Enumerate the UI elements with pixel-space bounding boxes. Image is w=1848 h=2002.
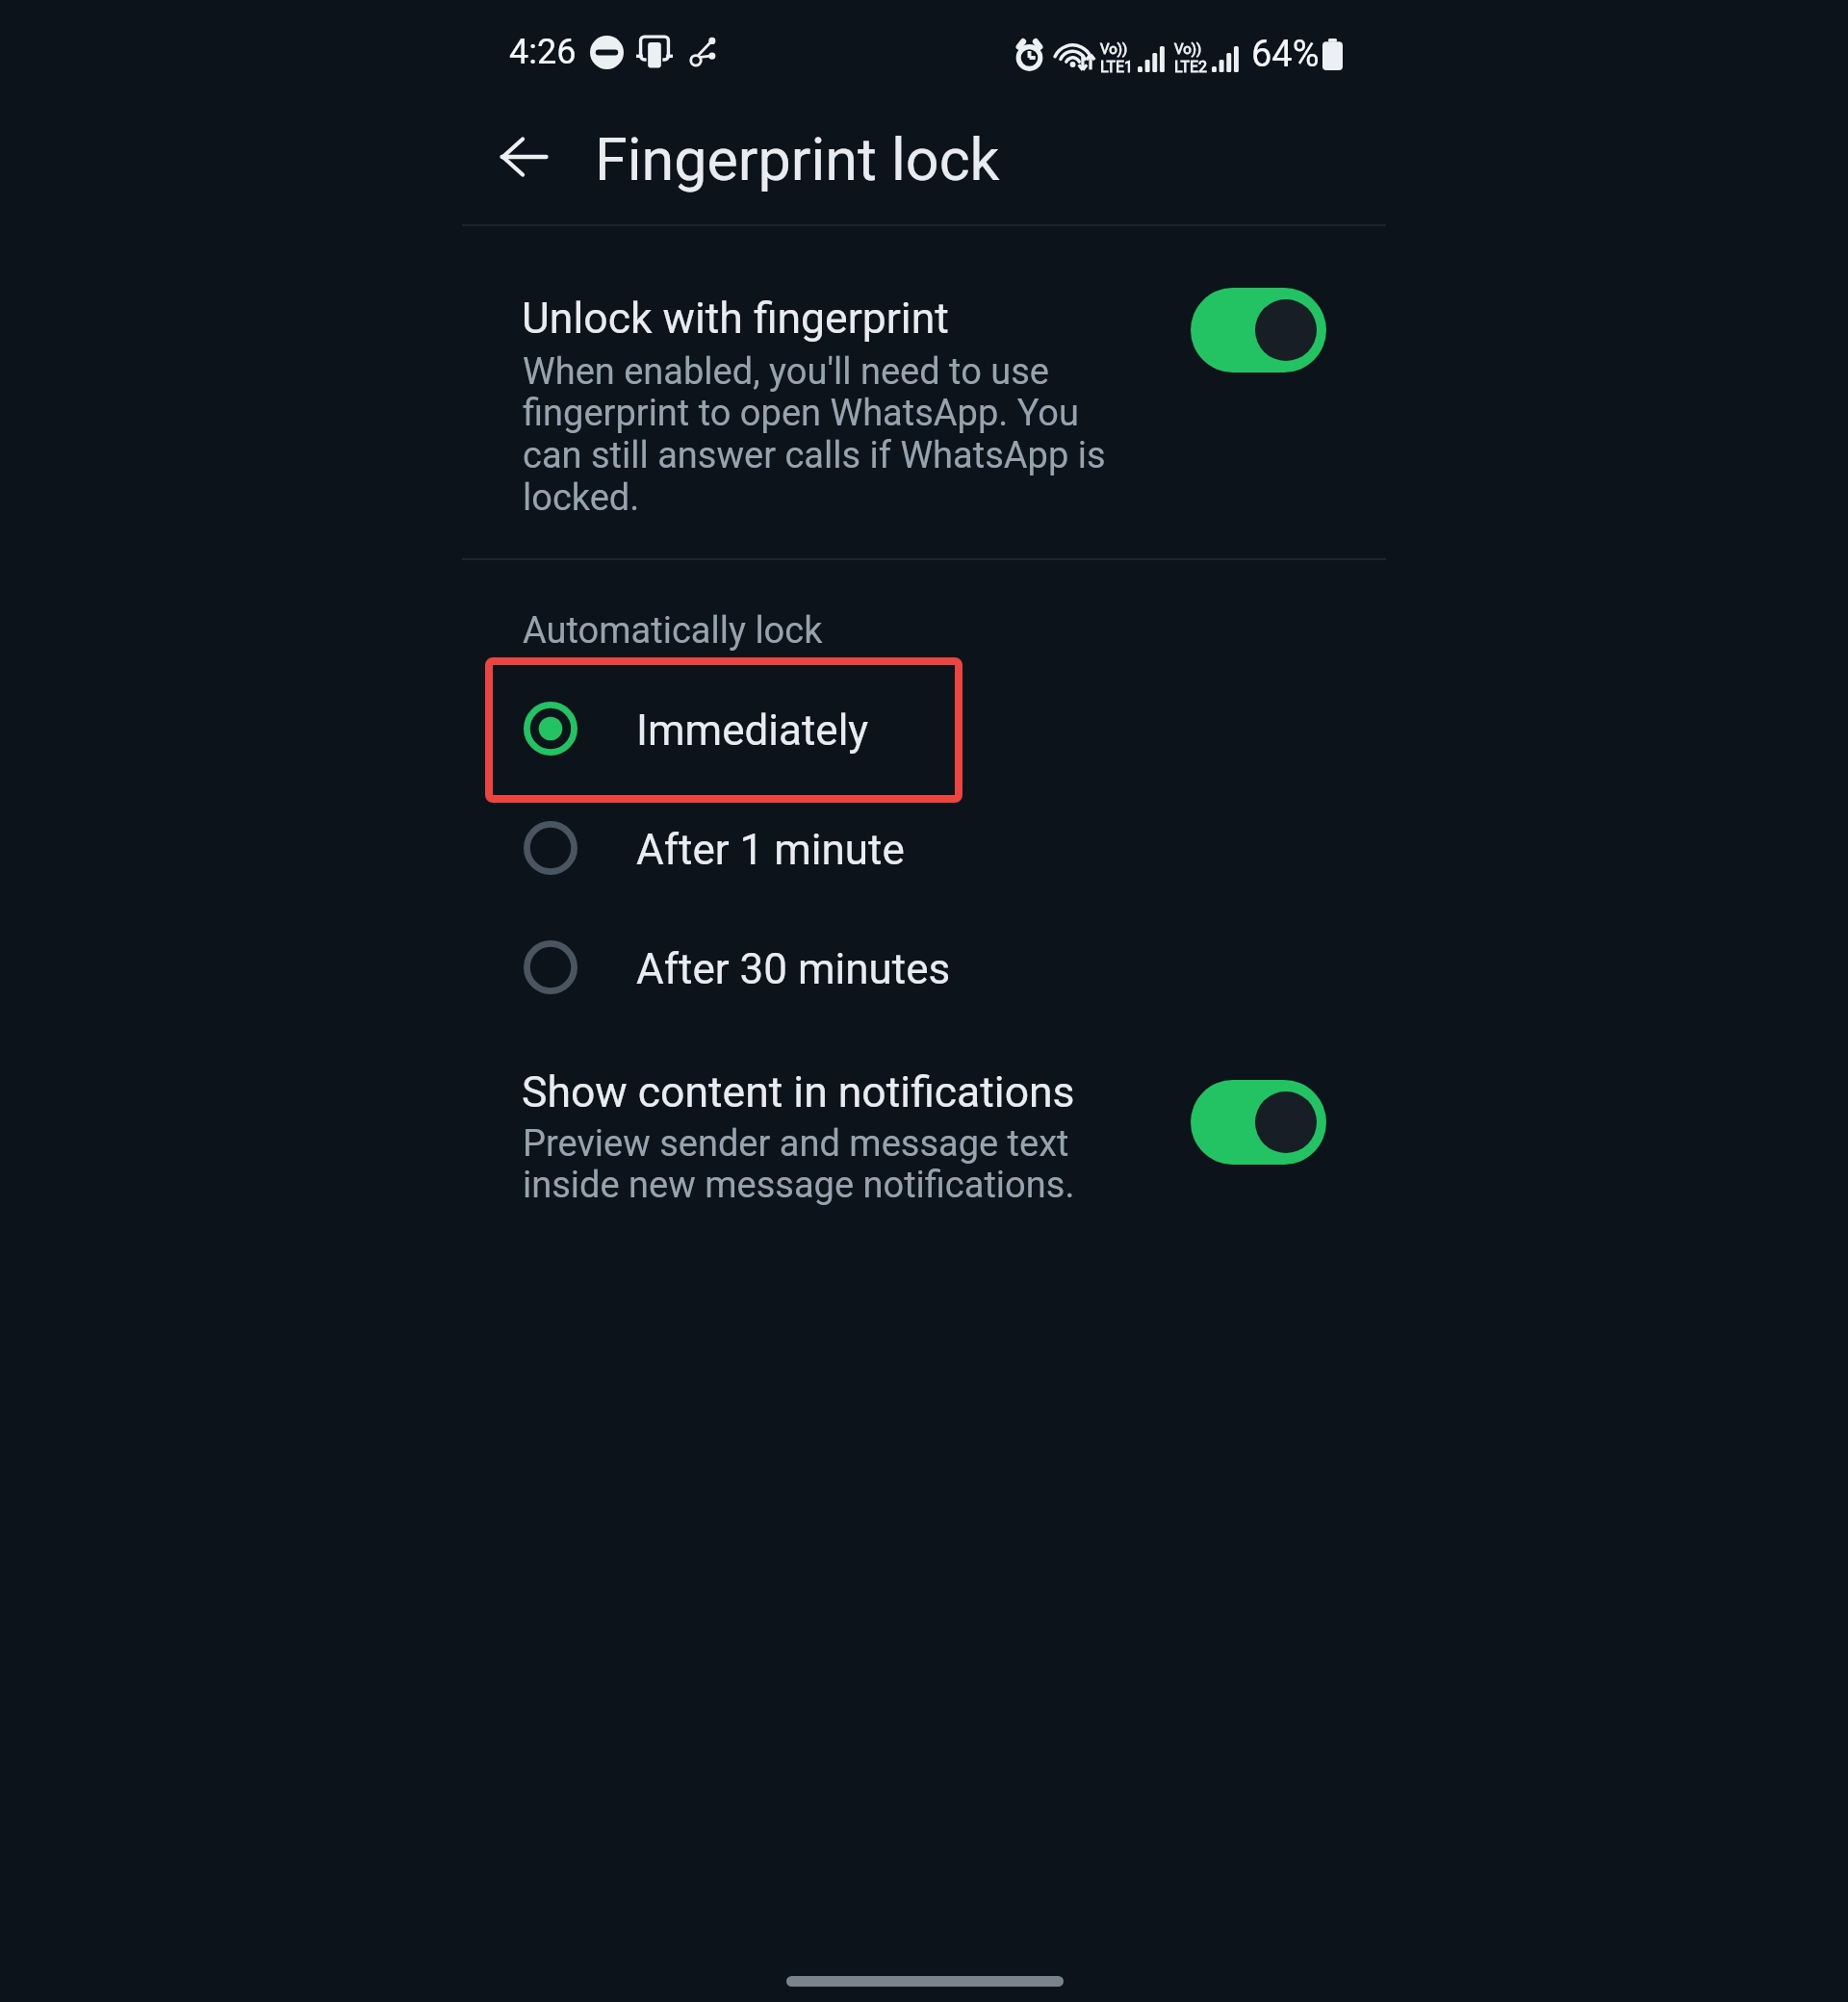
button[interactable]: Back <box>483 116 564 197</box>
staticText: After 30 minutes <box>636 944 951 994</box>
button[interactable]: Show content in notifications <box>462 1049 1386 1290</box>
staticText: LTE1 <box>1100 58 1134 76</box>
staticText: Immediately <box>636 706 869 756</box>
button[interactable]: After 30 minutes <box>485 908 1386 1027</box>
button[interactable]: Unlock with fingerprint <box>462 231 1386 558</box>
staticText: Unlock with fingerprint <box>522 294 949 344</box>
button[interactable]: Immediately <box>485 669 1386 788</box>
staticText: Automatically lock <box>523 609 823 653</box>
staticText: 4:26 <box>509 32 577 72</box>
staticText: Show content in notifications <box>522 1067 1075 1117</box>
staticText: Vo)) <box>1174 40 1202 58</box>
button[interactable]: Show content in notifications <box>1191 1080 1326 1165</box>
staticText: Fingerprint lock <box>595 125 1000 193</box>
staticText: Preview sender and message text inside n… <box>523 1122 1075 1207</box>
staticText: Vo)) <box>1100 40 1128 58</box>
staticText: When enabled, you'll need to use fingerp… <box>523 350 1106 520</box>
staticText: 64% <box>1251 33 1320 76</box>
staticText: LTE2 <box>1174 58 1208 76</box>
button[interactable]: After 1 minute <box>485 788 1386 908</box>
staticText: After 1 minute <box>636 825 905 875</box>
button[interactable]: Unlock with fingerprint <box>1191 288 1326 372</box>
